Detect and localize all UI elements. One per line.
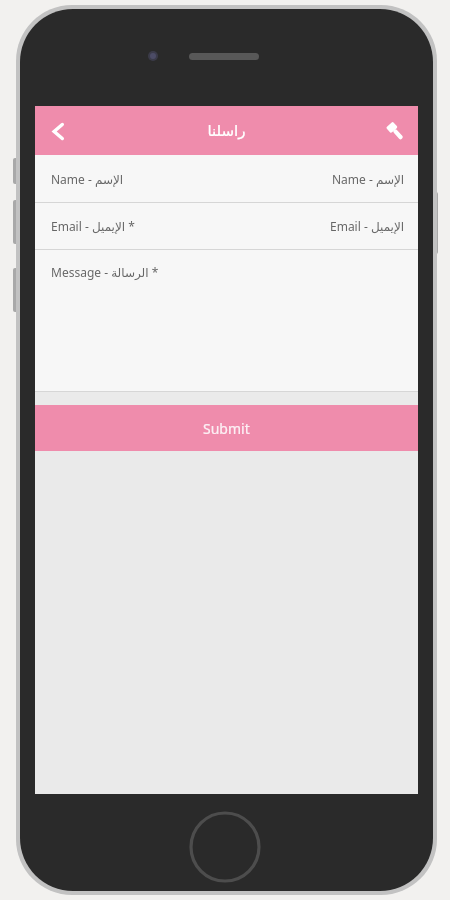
button[interactable]: Clear form xyxy=(372,108,418,154)
staticText: Message - الرسالة * xyxy=(51,264,159,280)
button[interactable]: Email - الإيميل * xyxy=(35,203,418,249)
button[interactable]: Message - الرسالة * xyxy=(35,250,418,391)
staticText: Email - الإيميل xyxy=(330,218,405,234)
button[interactable]: Back xyxy=(35,108,81,154)
staticText: Name - الإسم xyxy=(332,171,405,187)
staticText: Email - الإيميل * xyxy=(51,218,135,234)
staticText: راسلنا xyxy=(207,122,246,139)
staticText: Name - الإسم xyxy=(51,171,124,187)
button[interactable]: Submit xyxy=(35,405,418,451)
button[interactable]: Name - الإسم xyxy=(35,155,418,202)
staticText: Submit xyxy=(203,419,250,438)
